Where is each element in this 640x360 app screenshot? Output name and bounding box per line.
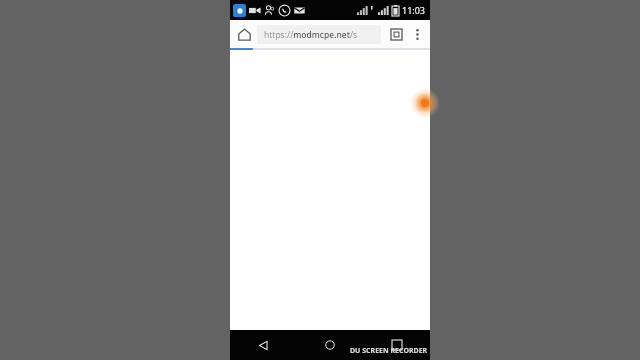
button[interactable]: More options: [407, 24, 427, 44]
staticText: 11:03: [402, 4, 426, 16]
button[interactable]: https://modmcpe.net/s: [257, 25, 381, 44]
button[interactable]: Home: [296, 330, 363, 360]
button[interactable]: Tabs: [385, 23, 407, 45]
button[interactable]: Back: [230, 330, 296, 360]
staticText: DU SCREEN RECORDER: [350, 346, 428, 356]
button[interactable]: Recent apps: [363, 330, 430, 360]
button[interactable]: Home: [233, 23, 255, 45]
staticText: https://modmcpe.net/s: [264, 29, 358, 41]
